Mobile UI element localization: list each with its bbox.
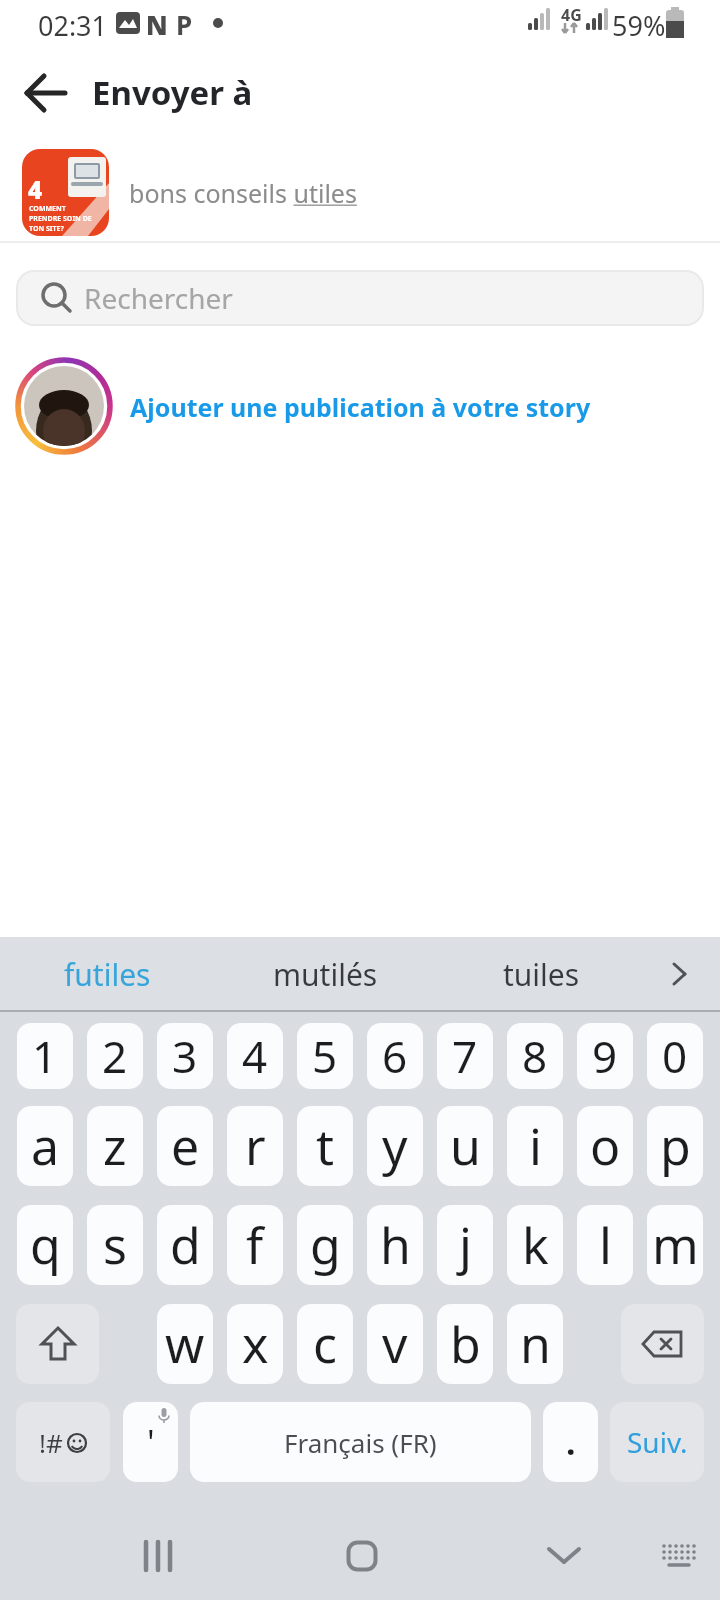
button[interactable]: u (437, 1106, 493, 1186)
button[interactable]: Ajouter une publication à votre story (0, 346, 720, 466)
staticText: 6 (382, 1026, 408, 1086)
button[interactable]: v (367, 1304, 423, 1384)
staticText: 1 (32, 1026, 58, 1086)
staticText: m (652, 1211, 699, 1279)
staticText: 9 (592, 1026, 618, 1086)
staticText: Rechercher (84, 279, 233, 317)
staticText: e (171, 1112, 200, 1180)
staticText: h (380, 1211, 411, 1279)
button[interactable]: g (297, 1205, 353, 1285)
button[interactable]: i (507, 1106, 563, 1186)
button[interactable]: !# (16, 1402, 110, 1482)
button[interactable]: 0 (647, 1023, 703, 1089)
button[interactable] (652, 1526, 706, 1586)
button[interactable] (534, 1526, 594, 1586)
staticText: tuiles (503, 954, 580, 995)
staticText: Suiv. (627, 1423, 688, 1461)
button[interactable]: y (367, 1106, 423, 1186)
staticText: bons conseils utiles (129, 176, 357, 210)
button[interactable]: . (543, 1402, 598, 1482)
button[interactable]: m (647, 1205, 703, 1285)
staticText: r (245, 1112, 266, 1180)
staticText: Envoyer à (92, 70, 253, 115)
staticText: d (170, 1211, 201, 1279)
button[interactable] (18, 65, 74, 121)
staticText: 59% (612, 7, 666, 44)
staticText: k (522, 1211, 549, 1279)
staticText: j (459, 1211, 472, 1279)
button[interactable]: tuiles (464, 937, 619, 1011)
staticText: PRENDRE SOIN DE (29, 214, 92, 224)
staticText: Ajouter une publication à votre story (130, 390, 591, 424)
button[interactable]: x (227, 1304, 283, 1384)
button[interactable]: d (157, 1205, 213, 1285)
button[interactable]: o (577, 1106, 633, 1186)
button[interactable]: Rechercher (16, 270, 704, 326)
staticText: p (660, 1112, 691, 1180)
button[interactable]: 5 (297, 1023, 353, 1089)
staticText: N (146, 7, 168, 42)
staticText: f (246, 1211, 264, 1279)
button[interactable]: k (507, 1205, 563, 1285)
staticText: 7 (452, 1026, 478, 1086)
staticText: o (590, 1112, 621, 1180)
button[interactable]: 7 (437, 1023, 493, 1089)
button[interactable] (650, 937, 710, 1011)
button[interactable]: r (227, 1106, 283, 1186)
staticText: ' (147, 1419, 155, 1465)
button[interactable] (16, 1304, 99, 1384)
staticText: 02:31 (38, 7, 108, 44)
button[interactable]: Français (FR) (190, 1402, 531, 1482)
staticText: 4G (561, 4, 582, 26)
button[interactable] (130, 1526, 190, 1586)
staticText: mutilés (273, 954, 378, 995)
staticText: COMMENT (29, 204, 66, 214)
button[interactable]: ' (123, 1402, 178, 1482)
button[interactable]: 3 (157, 1023, 213, 1089)
staticText: i (529, 1112, 542, 1180)
button[interactable]: mutilés (248, 937, 403, 1011)
button[interactable]: 2 (87, 1023, 143, 1089)
staticText: q (30, 1211, 61, 1279)
button[interactable]: l (577, 1205, 633, 1285)
button[interactable]: Suiv. (610, 1402, 704, 1482)
button[interactable]: 1 (17, 1023, 73, 1089)
button[interactable]: z (87, 1106, 143, 1186)
staticText: t (316, 1112, 335, 1180)
button[interactable]: f (227, 1205, 283, 1285)
staticText: g (310, 1211, 341, 1279)
button[interactable] (332, 1526, 392, 1586)
staticText: u (450, 1112, 481, 1180)
button[interactable] (621, 1304, 704, 1384)
staticText: . (566, 1419, 576, 1465)
staticText: n (520, 1310, 551, 1378)
staticText: TON SITE? (29, 224, 64, 234)
button[interactable]: s (87, 1205, 143, 1285)
button[interactable]: e (157, 1106, 213, 1186)
button[interactable]: j (437, 1205, 493, 1285)
staticText: s (103, 1211, 127, 1279)
button[interactable]: n (507, 1304, 563, 1384)
button[interactable]: c (297, 1304, 353, 1384)
button[interactable]: t (297, 1106, 353, 1186)
staticText: x (242, 1310, 269, 1378)
button[interactable]: 8 (507, 1023, 563, 1089)
staticText: 2 (102, 1026, 128, 1086)
button[interactable]: p (647, 1106, 703, 1186)
button[interactable]: 6 (367, 1023, 423, 1089)
button[interactable]: a (17, 1106, 73, 1186)
staticText: 5 (312, 1026, 338, 1086)
staticText: v (382, 1310, 408, 1378)
staticText: 8 (522, 1026, 548, 1086)
button[interactable]: q (17, 1205, 73, 1285)
staticText: c (313, 1310, 337, 1378)
button[interactable]: futiles (30, 937, 185, 1011)
staticText: l (599, 1211, 612, 1279)
staticText: 3 (172, 1026, 198, 1086)
staticText: 4 (28, 173, 43, 206)
button[interactable]: 9 (577, 1023, 633, 1089)
button[interactable]: 4 (227, 1023, 283, 1089)
button[interactable]: w (157, 1304, 213, 1384)
button[interactable]: h (367, 1205, 423, 1285)
button[interactable]: b (437, 1304, 493, 1384)
